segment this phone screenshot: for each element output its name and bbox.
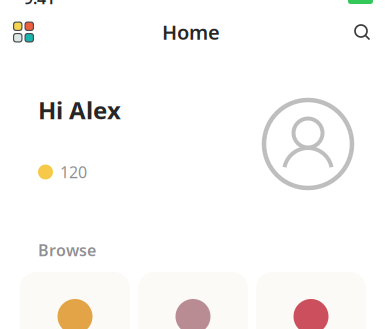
staticText: Browse	[38, 239, 96, 261]
button[interactable]: App menu	[3, 5, 82, 59]
button[interactable]: Search	[335, 5, 387, 59]
button[interactable]: Profile	[261, 97, 354, 190]
button[interactable]: Coffee	[20, 272, 130, 329]
staticText: 9:41	[24, 0, 55, 9]
staticText: Hi Alex	[38, 94, 121, 126]
staticText: Home	[162, 19, 220, 45]
button[interactable]: Bakery	[138, 272, 248, 329]
button[interactable]: Drinks	[256, 272, 366, 329]
staticText: 120	[60, 161, 87, 183]
